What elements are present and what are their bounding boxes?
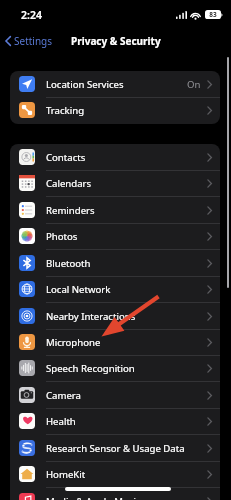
staticText: Local Network (46, 283, 111, 296)
button[interactable]: Local Network (10, 276, 220, 302)
button[interactable]: Nearby Interactions (10, 303, 220, 329)
button[interactable]: Bluetooth (10, 250, 220, 276)
staticText: Reminders (46, 204, 95, 217)
staticText: Media & Apple Music (46, 495, 141, 500)
staticText: 2:24 (21, 8, 42, 22)
button[interactable]: Location Services (10, 71, 220, 97)
staticText: 83 (209, 10, 217, 19)
staticText: Contacts (46, 151, 86, 164)
button[interactable]: HomeKit (10, 461, 220, 487)
button[interactable]: Tracking (10, 97, 220, 123)
staticText: Bluetooth (46, 257, 91, 270)
button[interactable]: Media & Apple Music (10, 488, 220, 500)
staticText: On (187, 78, 201, 91)
button[interactable]: Photos (10, 223, 220, 249)
button[interactable]: Calendars (10, 170, 220, 196)
button[interactable]: Settings (0, 34, 59, 48)
button[interactable]: Health (10, 408, 220, 434)
button[interactable]: Contacts (10, 144, 220, 170)
staticText: Health (46, 415, 76, 428)
staticText: Tracking (46, 104, 85, 117)
button[interactable]: Reminders (10, 197, 220, 223)
staticText: Microphone (46, 336, 101, 349)
button[interactable]: Microphone (10, 329, 220, 355)
staticText: Speech Recognition (46, 362, 135, 375)
staticText: Photos (46, 230, 78, 243)
staticText: Camera (46, 389, 81, 402)
staticText: Settings (14, 34, 53, 48)
button[interactable]: Research Sensor & Usage Data (10, 435, 220, 461)
staticText: Research Sensor & Usage Data (46, 442, 185, 455)
staticText: Privacy & Security (71, 34, 161, 48)
staticText: Location Services (46, 78, 124, 91)
button[interactable]: Camera (10, 382, 220, 408)
staticText: HomeKit (46, 468, 86, 481)
button[interactable]: Speech Recognition (10, 355, 220, 381)
staticText: Calendars (46, 177, 92, 190)
staticText: Nearby Interactions (46, 310, 136, 323)
